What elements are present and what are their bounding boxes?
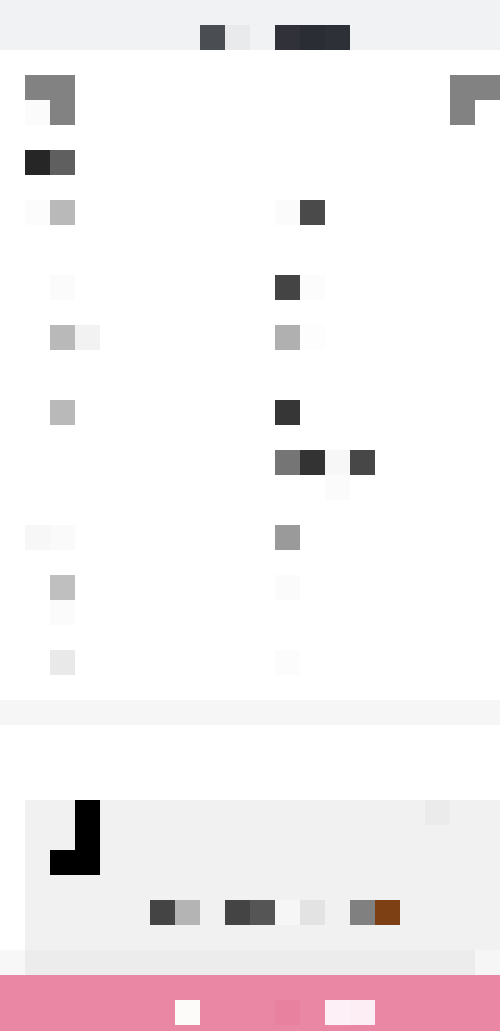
button[interactable]: Open profile	[450, 75, 500, 125]
button[interactable]: Primary value	[275, 450, 325, 475]
button[interactable]: Tag three	[350, 900, 400, 925]
button[interactable]: Category	[25, 150, 75, 175]
button[interactable]: Tag two	[225, 900, 275, 925]
button[interactable]: Tag one	[150, 900, 200, 925]
button[interactable]: Open navigation menu	[25, 75, 75, 125]
